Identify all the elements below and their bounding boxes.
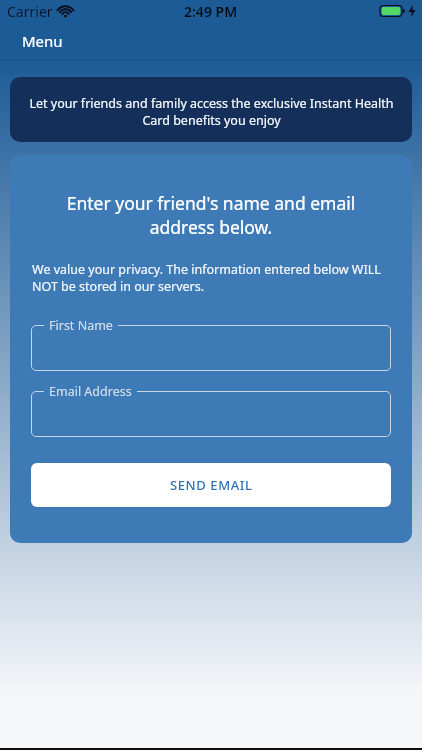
staticText: SEND EMAIL <box>170 476 253 494</box>
staticText: We value your privacy. The information e… <box>32 261 390 295</box>
staticText: 2:49 PM <box>184 2 238 21</box>
button[interactable]: SEND EMAIL <box>31 463 391 507</box>
button[interactable] <box>31 391 391 437</box>
staticText: Enter your friend's name and email addre… <box>50 191 372 239</box>
button[interactable]: Menu <box>22 31 63 51</box>
staticText: Carrier <box>7 2 53 21</box>
staticText: Let your friends and family access the e… <box>29 95 394 129</box>
button[interactable] <box>31 325 391 371</box>
staticText: First Name <box>49 317 113 334</box>
staticText: Email Address <box>49 383 132 400</box>
